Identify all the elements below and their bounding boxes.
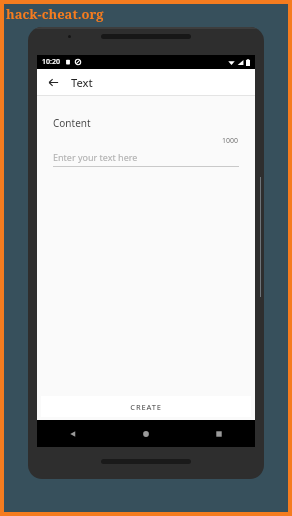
button[interactable]: Home xyxy=(109,420,182,447)
staticText: Text xyxy=(71,75,93,90)
button[interactable]: Enter your text here xyxy=(53,148,239,166)
staticText: hack-cheat.org xyxy=(6,5,104,23)
staticText: 10:20 xyxy=(42,57,60,67)
button[interactable]: Back xyxy=(43,72,63,92)
staticText: 1000 xyxy=(222,136,239,146)
staticText: CREATE xyxy=(130,402,162,412)
staticText: Content xyxy=(53,116,91,130)
button[interactable]: Recent apps xyxy=(182,420,255,447)
button[interactable]: CREATE xyxy=(41,396,251,417)
staticText: Enter your text here xyxy=(53,151,138,163)
button[interactable]: Back xyxy=(37,420,109,447)
